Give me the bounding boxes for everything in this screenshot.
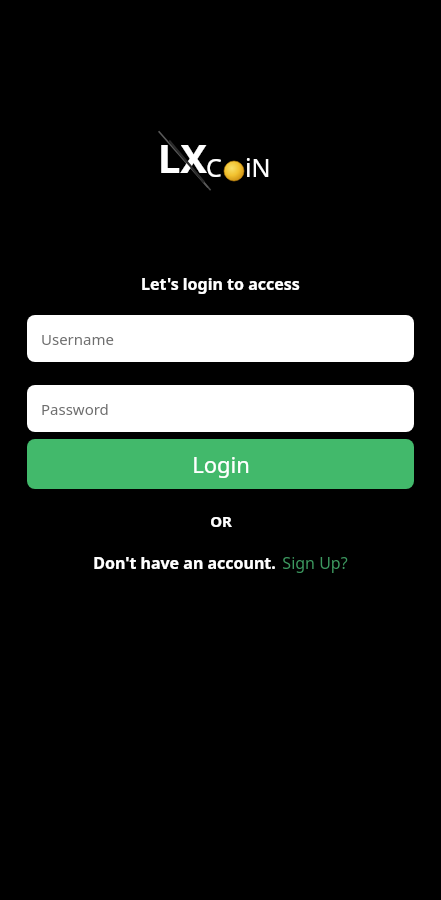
button[interactable]: Login — [27, 439, 414, 489]
staticText: Sign Up? — [282, 552, 348, 574]
button[interactable]: Username — [27, 315, 414, 362]
button[interactable]: Sign Up? — [282, 552, 348, 574]
staticText: Password — [41, 399, 109, 419]
staticText: Don't have an account. — [93, 552, 276, 574]
button[interactable]: Password — [27, 385, 414, 432]
staticText: OR — [210, 511, 232, 531]
staticText: Username — [41, 329, 114, 349]
other: LX Coin logo — [156, 130, 286, 188]
staticText: iN — [245, 150, 271, 184]
staticText: C — [206, 150, 222, 184]
staticText: LX — [158, 130, 208, 184]
staticText: Login — [192, 449, 250, 479]
staticText: Let's login to access — [141, 273, 300, 295]
